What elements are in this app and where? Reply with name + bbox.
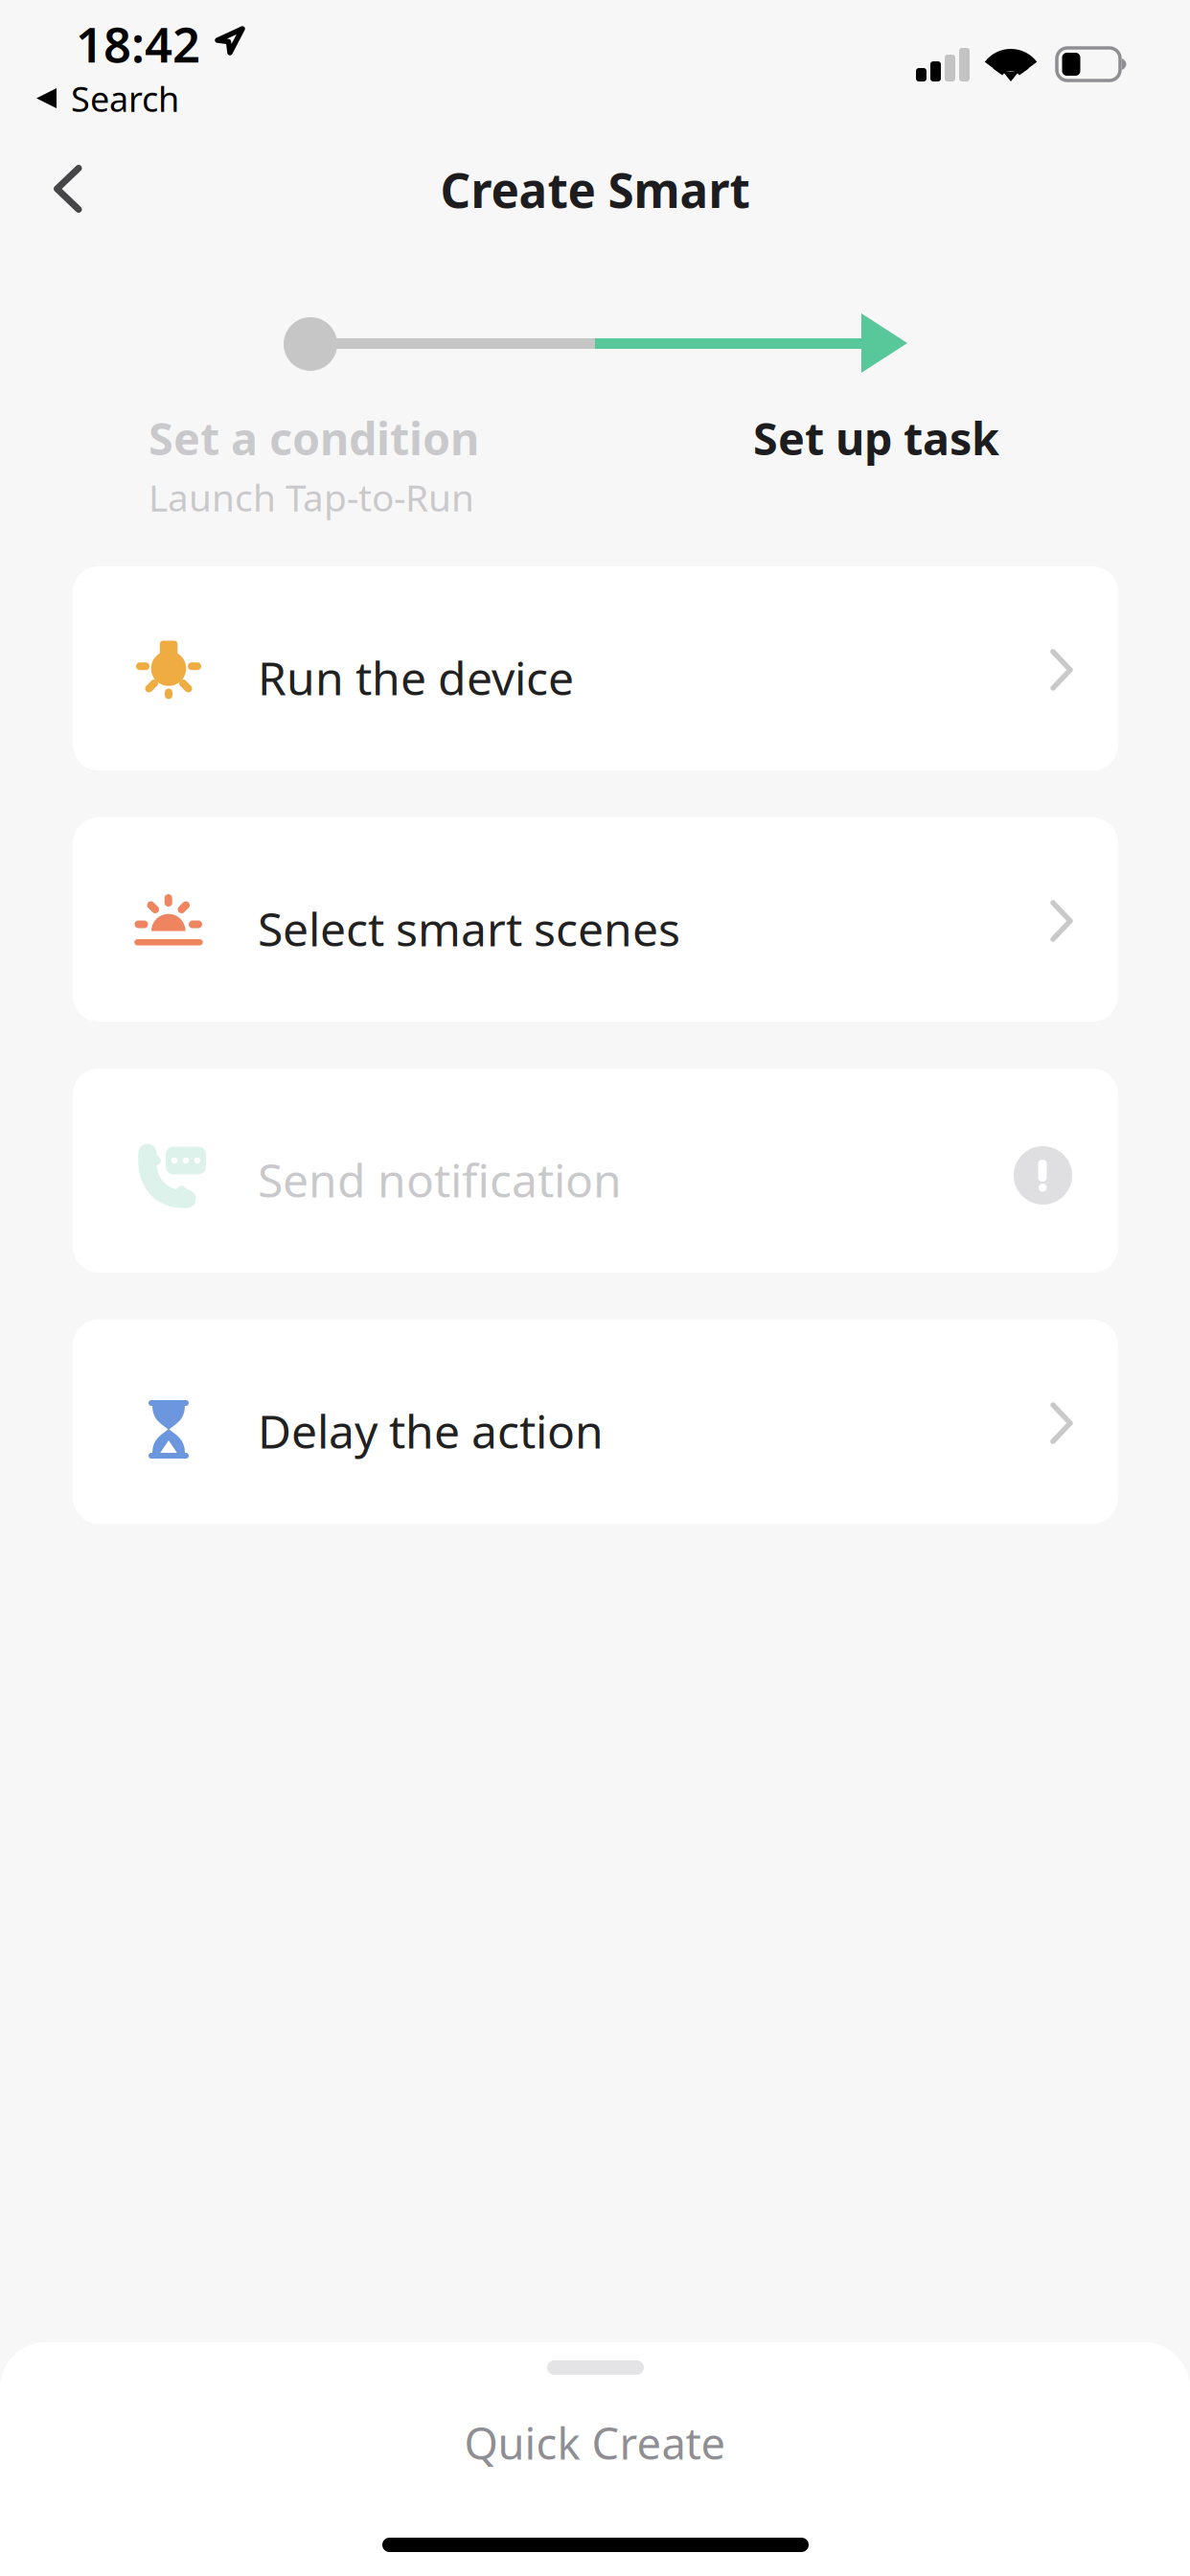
button[interactable]: Back (54, 165, 82, 213)
button[interactable]: Quick Create (0, 2408, 1190, 2477)
staticText: Set up task (753, 408, 999, 468)
staticText: Search (71, 76, 179, 122)
staticText: Run the device (258, 647, 574, 708)
staticText: Delay the action (258, 1400, 604, 1461)
staticText: Set a condition (149, 408, 479, 468)
button[interactable]: Delay the action (73, 1320, 1118, 1524)
staticText: Select smart scenes (258, 898, 680, 959)
button[interactable]: Select smart scenes (73, 817, 1118, 1022)
staticText: 18:42 (76, 11, 200, 76)
button[interactable]: Run the device (73, 566, 1118, 770)
button[interactable]: Send notification (73, 1069, 1118, 1273)
staticText: Create Smart (440, 158, 750, 221)
staticText: Quick Create (464, 2414, 726, 2472)
staticText: Send notification (258, 1149, 622, 1210)
staticText: Launch Tap-to-Run (149, 472, 474, 522)
